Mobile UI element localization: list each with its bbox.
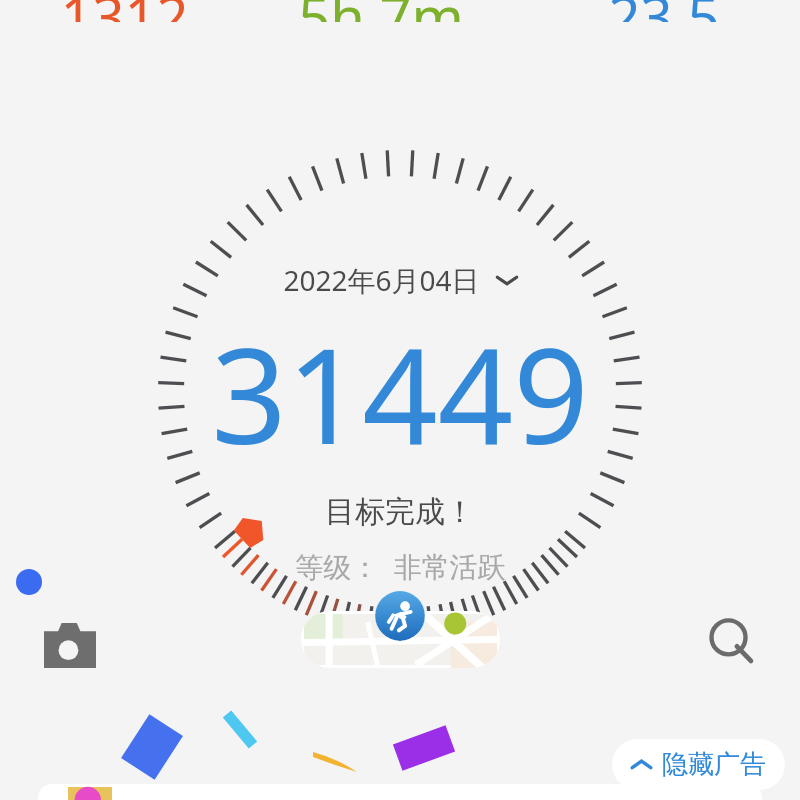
staticText: 2022年6月04日 bbox=[283, 261, 480, 299]
button[interactable]: Search bbox=[705, 615, 761, 671]
staticText: 隐藏广告 bbox=[662, 748, 766, 781]
button[interactable]: Camera bbox=[44, 621, 96, 668]
staticText: 31449 bbox=[211, 303, 589, 483]
staticText: 1312 bbox=[60, 0, 189, 22]
button[interactable] bbox=[38, 784, 762, 800]
staticText: 目标完成！ bbox=[325, 493, 475, 531]
button[interactable]: 2022年6月04日 bbox=[275, 259, 526, 301]
staticText: 23.5 bbox=[608, 0, 720, 22]
button[interactable]: Running route map bbox=[301, 611, 500, 668]
staticText: 等级： 非常活跃 bbox=[295, 547, 506, 585]
staticText: 5h 7m bbox=[298, 0, 464, 22]
button[interactable]: 隐藏广告 bbox=[612, 739, 785, 790]
